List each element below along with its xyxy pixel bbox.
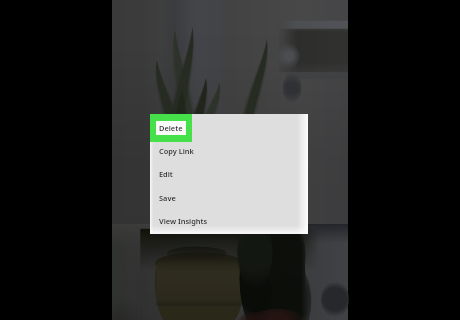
button[interactable]: Delete: [156, 121, 186, 135]
button[interactable]: Copy Link: [150, 139, 308, 162]
staticText: View Insights: [159, 216, 208, 226]
button[interactable]: Save: [150, 186, 308, 209]
button[interactable]: Edit: [150, 162, 308, 185]
staticText: Save: [159, 193, 176, 203]
button[interactable]: View Insights: [150, 209, 308, 232]
staticText: Copy Link: [159, 146, 194, 156]
staticText: Delete: [159, 123, 183, 133]
staticText: Edit: [159, 169, 173, 179]
staticText: Delete: [159, 123, 183, 133]
button[interactable]: Delete: [150, 116, 308, 139]
